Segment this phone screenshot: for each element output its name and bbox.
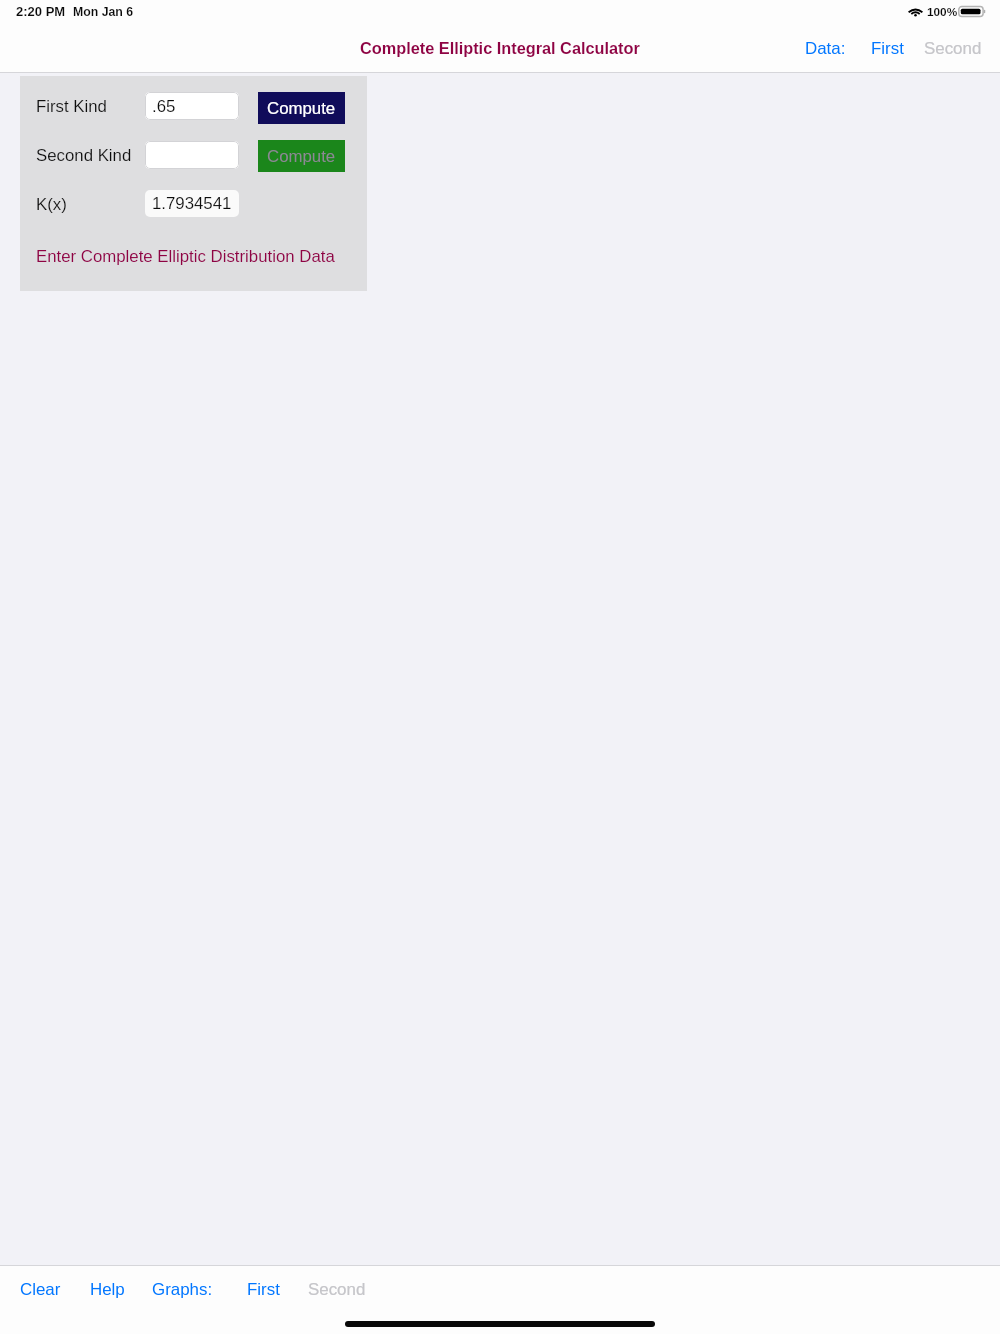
staticText: Second Kind: [36, 146, 132, 165]
staticText: First: [247, 1280, 280, 1299]
staticText: Data:: [805, 39, 846, 58]
staticText: 1.7934541: [152, 194, 232, 213]
staticText: Mon Jan 6: [73, 5, 134, 19]
staticText: Help: [90, 1280, 125, 1299]
button[interactable]: First: [866, 32, 909, 65]
button[interactable]: Enter Complete Elliptic Distribution Dat…: [36, 247, 335, 266]
button[interactable]: Help: [87, 1272, 128, 1307]
staticText: Clear: [20, 1280, 61, 1299]
button[interactable]: First: [244, 1272, 283, 1307]
other: Battery full: [958, 5, 985, 18]
staticText: Compute: [267, 99, 336, 118]
button[interactable]: Second: [919, 32, 987, 65]
staticText: .65: [152, 97, 176, 116]
staticText: Second: [308, 1280, 366, 1299]
staticText: Compute: [267, 147, 336, 166]
staticText: Second: [924, 39, 982, 58]
staticText: First Kind: [36, 97, 107, 116]
staticText: 2:20 PM: [16, 4, 66, 19]
button[interactable]: Compute: [258, 92, 345, 124]
staticText: Enter Complete Elliptic Distribution Dat…: [36, 247, 335, 266]
button[interactable]: Second: [305, 1272, 369, 1307]
staticText: Complete Elliptic Integral Calculator: [360, 39, 640, 57]
staticText: First: [871, 39, 904, 58]
button[interactable]: Graphs:: [149, 1272, 216, 1307]
button[interactable]: Clear: [17, 1272, 64, 1307]
staticText: Graphs:: [152, 1280, 213, 1299]
other: Wi-Fi: [908, 6, 923, 18]
staticText: 100%: [927, 5, 958, 18]
staticText: K(x): [36, 195, 67, 214]
button[interactable]: Second kind value: [145, 141, 239, 169]
button[interactable]: Data:: [800, 32, 851, 65]
button[interactable]: Compute: [258, 140, 345, 172]
button[interactable]: First kind value: [145, 92, 239, 120]
